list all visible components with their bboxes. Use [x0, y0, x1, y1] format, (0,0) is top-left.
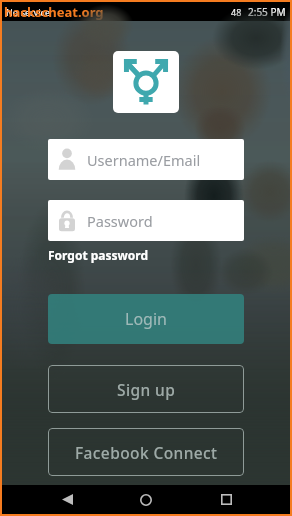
button[interactable]: Username/Email	[48, 139, 244, 180]
staticText: Facebook Connect	[75, 442, 218, 463]
staticText: 48	[231, 6, 242, 18]
staticText: No service	[6, 6, 51, 18]
staticText: hackscheat.org	[4, 3, 104, 21]
button[interactable]: Facebook Connect	[48, 428, 244, 476]
button[interactable]: Sign up	[48, 365, 244, 413]
staticText: Username/Email	[87, 150, 201, 170]
button[interactable]: Forgot password	[48, 247, 149, 263]
staticText: Login	[125, 308, 167, 330]
button[interactable]: Login	[48, 294, 244, 344]
staticText: Sign up	[117, 379, 176, 400]
staticText: 2:55 PM	[248, 5, 286, 19]
button[interactable]: Back	[52, 485, 82, 514]
button[interactable]: Recents	[211, 485, 241, 514]
button[interactable]: Password	[48, 200, 244, 241]
staticText: Password	[87, 211, 153, 231]
button[interactable]: App logo	[113, 51, 179, 113]
button[interactable]: Home	[131, 485, 161, 514]
